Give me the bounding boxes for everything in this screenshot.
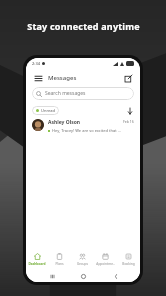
- staticText: Feb 16: [123, 119, 134, 124]
- button[interactable]: Plans: [48, 249, 71, 269]
- button[interactable]: Menu: [32, 72, 44, 84]
- staticText: Stay connected anytime: [27, 20, 140, 32]
- staticText: Appointme..: [96, 262, 115, 266]
- staticText: Booking: [122, 262, 135, 266]
- staticText: Ashley Olson: [48, 119, 81, 126]
- staticText: 2:34: [32, 61, 40, 66]
- button[interactable]: Recents: [46, 270, 58, 282]
- staticText: Dashboard: [28, 262, 46, 266]
- staticText: Unread: [41, 108, 55, 113]
- button[interactable]: Unread: [32, 106, 59, 115]
- button[interactable]: Ashley Olson: [26, 115, 140, 137]
- button[interactable]: Sort: [125, 106, 134, 115]
- button[interactable]: Appointme..: [94, 249, 117, 269]
- staticText: Search messages: [45, 90, 86, 97]
- button[interactable]: Groups: [71, 249, 94, 269]
- staticText: Hey, Tracey! We are so excited that ...: [52, 128, 121, 133]
- button[interactable]: Search messages: [32, 87, 134, 100]
- staticText: Groups: [77, 262, 88, 266]
- button[interactable]: Back: [109, 270, 121, 282]
- staticText: Plans: [55, 262, 64, 266]
- button[interactable]: Booking: [117, 249, 140, 269]
- button[interactable]: Compose message: [122, 72, 134, 84]
- button[interactable]: Home: [77, 270, 89, 282]
- staticText: Messages: [48, 74, 77, 82]
- button[interactable]: Dashboard: [26, 249, 48, 269]
